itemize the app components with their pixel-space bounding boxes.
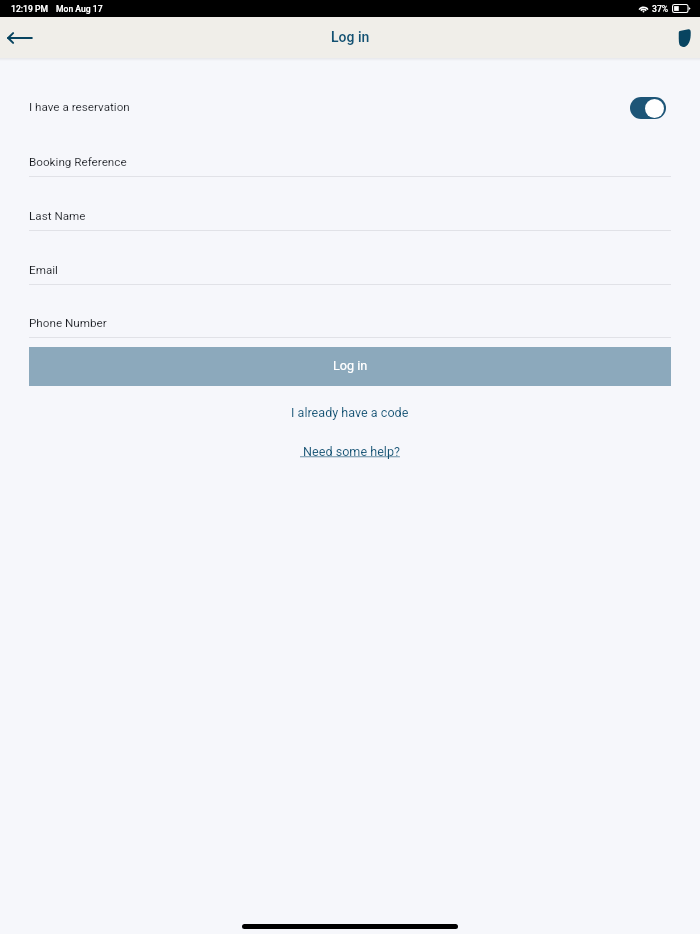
staticText: Email <box>29 263 58 277</box>
staticText: Log in <box>333 358 368 373</box>
staticText: Phone Number <box>29 316 107 330</box>
staticText: I have a reservation <box>29 100 130 114</box>
staticText: Last Name <box>29 209 86 223</box>
button[interactable]: Need some help? <box>0 435 700 468</box>
button[interactable]: I have a reservation toggle <box>630 97 666 119</box>
button[interactable]: Log in <box>29 347 671 386</box>
staticText: Need some help? <box>300 444 400 459</box>
button[interactable] <box>0 139 700 176</box>
button[interactable] <box>0 72 700 116</box>
button[interactable]: Back <box>3 21 37 55</box>
staticText: Log in <box>331 29 370 45</box>
button[interactable]: I already have a code <box>0 396 700 429</box>
button[interactable] <box>0 247 700 284</box>
button[interactable]: Account <box>667 21 700 55</box>
button[interactable] <box>0 193 700 230</box>
staticText: Booking Reference <box>29 155 127 169</box>
staticText: I already have a code <box>291 405 409 420</box>
button[interactable] <box>0 300 700 337</box>
staticText: Mon Aug 17 <box>56 4 103 14</box>
staticText: 12:19 PM <box>11 4 48 14</box>
staticText: 37% <box>652 4 669 14</box>
